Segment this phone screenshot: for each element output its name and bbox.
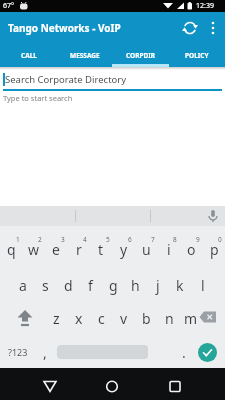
staticText: d: [64, 276, 73, 295]
button[interactable]: CORPDIR: [113, 44, 169, 67]
staticText: 0: [218, 235, 222, 244]
staticText: 67°: [3, 1, 15, 11]
staticText: f: [88, 276, 93, 295]
button[interactable]: m: [180, 308, 202, 328]
staticText: 12:39: [196, 1, 214, 11]
staticText: m: [184, 309, 198, 328]
staticText: 6: [128, 235, 132, 244]
staticText: k: [176, 276, 184, 295]
staticText: l: [201, 276, 205, 295]
staticText: g: [109, 276, 118, 295]
staticText: MESSAGE: [70, 51, 100, 60]
button[interactable]: ?123: [4, 344, 32, 360]
button[interactable]: i: [158, 239, 180, 259]
staticText: Type to start search: [3, 93, 73, 103]
staticText: Tango Networks - VoIP: [8, 21, 121, 35]
staticText: v: [120, 309, 128, 328]
staticText: 8: [173, 235, 177, 244]
staticText: ,: [43, 343, 47, 362]
button[interactable]: g: [102, 275, 124, 295]
staticText: x: [75, 309, 83, 328]
button[interactable]: t: [90, 239, 112, 259]
staticText: 7: [151, 235, 155, 244]
button[interactable]: o: [180, 239, 202, 259]
staticText: h: [131, 276, 140, 295]
staticText: 4: [83, 235, 87, 244]
staticText: CALL: [21, 51, 37, 60]
button[interactable]: [13, 307, 37, 329]
staticText: i: [167, 240, 171, 259]
button[interactable]: [38, 374, 62, 398]
button[interactable]: x: [68, 308, 90, 328]
button[interactable]: p: [203, 239, 225, 259]
staticText: 5: [106, 235, 110, 244]
button[interactable]: k: [169, 275, 191, 295]
staticText: e: [52, 240, 60, 259]
button[interactable]: q: [0, 239, 22, 259]
button[interactable]: b: [135, 308, 157, 328]
button[interactable]: n: [158, 308, 180, 328]
button[interactable]: CALL: [0, 44, 57, 67]
button[interactable]: .: [173, 342, 195, 362]
staticText: u: [142, 240, 151, 259]
staticText: y: [120, 240, 128, 259]
staticText: 9: [196, 235, 200, 244]
button[interactable]: h: [124, 275, 146, 295]
button[interactable]: f: [79, 275, 101, 295]
staticText: .: [182, 343, 186, 362]
staticText: a: [19, 276, 27, 295]
button[interactable]: ,: [34, 342, 56, 362]
button[interactable]: [198, 343, 217, 362]
button[interactable]: [198, 310, 220, 326]
staticText: CORPDIR: [126, 51, 156, 60]
button[interactable]: u: [135, 239, 157, 259]
button[interactable]: w: [23, 239, 45, 259]
button[interactable]: [163, 374, 187, 398]
button[interactable]: [181, 19, 199, 37]
staticText: n: [165, 309, 174, 328]
staticText: 1: [16, 235, 20, 244]
staticText: t: [98, 240, 104, 259]
staticText: r: [76, 240, 82, 259]
staticText: o: [187, 240, 196, 259]
button[interactable]: l: [192, 275, 214, 295]
staticText: ?123: [8, 346, 28, 358]
staticText: w: [28, 240, 40, 259]
button[interactable]: POLICY: [169, 44, 225, 67]
button[interactable]: v: [113, 308, 135, 328]
staticText: 3: [61, 235, 65, 244]
staticText: s: [42, 276, 49, 295]
button[interactable]: [100, 374, 124, 398]
button[interactable]: a: [12, 275, 34, 295]
staticText: 2: [38, 235, 42, 244]
staticText: POLICY: [185, 51, 209, 60]
button[interactable]: y: [113, 239, 135, 259]
staticText: c: [98, 309, 105, 328]
button[interactable]: MESSAGE: [57, 44, 113, 67]
button[interactable]: [206, 19, 220, 37]
button[interactable]: z: [45, 308, 67, 328]
button[interactable]: e: [45, 239, 67, 259]
staticText: q: [7, 240, 16, 259]
button[interactable]: c: [90, 308, 112, 328]
staticText: z: [53, 309, 60, 328]
button[interactable]: r: [68, 239, 90, 259]
button[interactable]: d: [57, 275, 79, 295]
button[interactable]: j: [147, 275, 169, 295]
staticText: j: [156, 276, 160, 295]
staticText: p: [210, 240, 219, 259]
button[interactable]: s: [34, 275, 56, 295]
staticText: Search Corporate Directory: [5, 73, 127, 86]
staticText: b: [142, 309, 151, 328]
